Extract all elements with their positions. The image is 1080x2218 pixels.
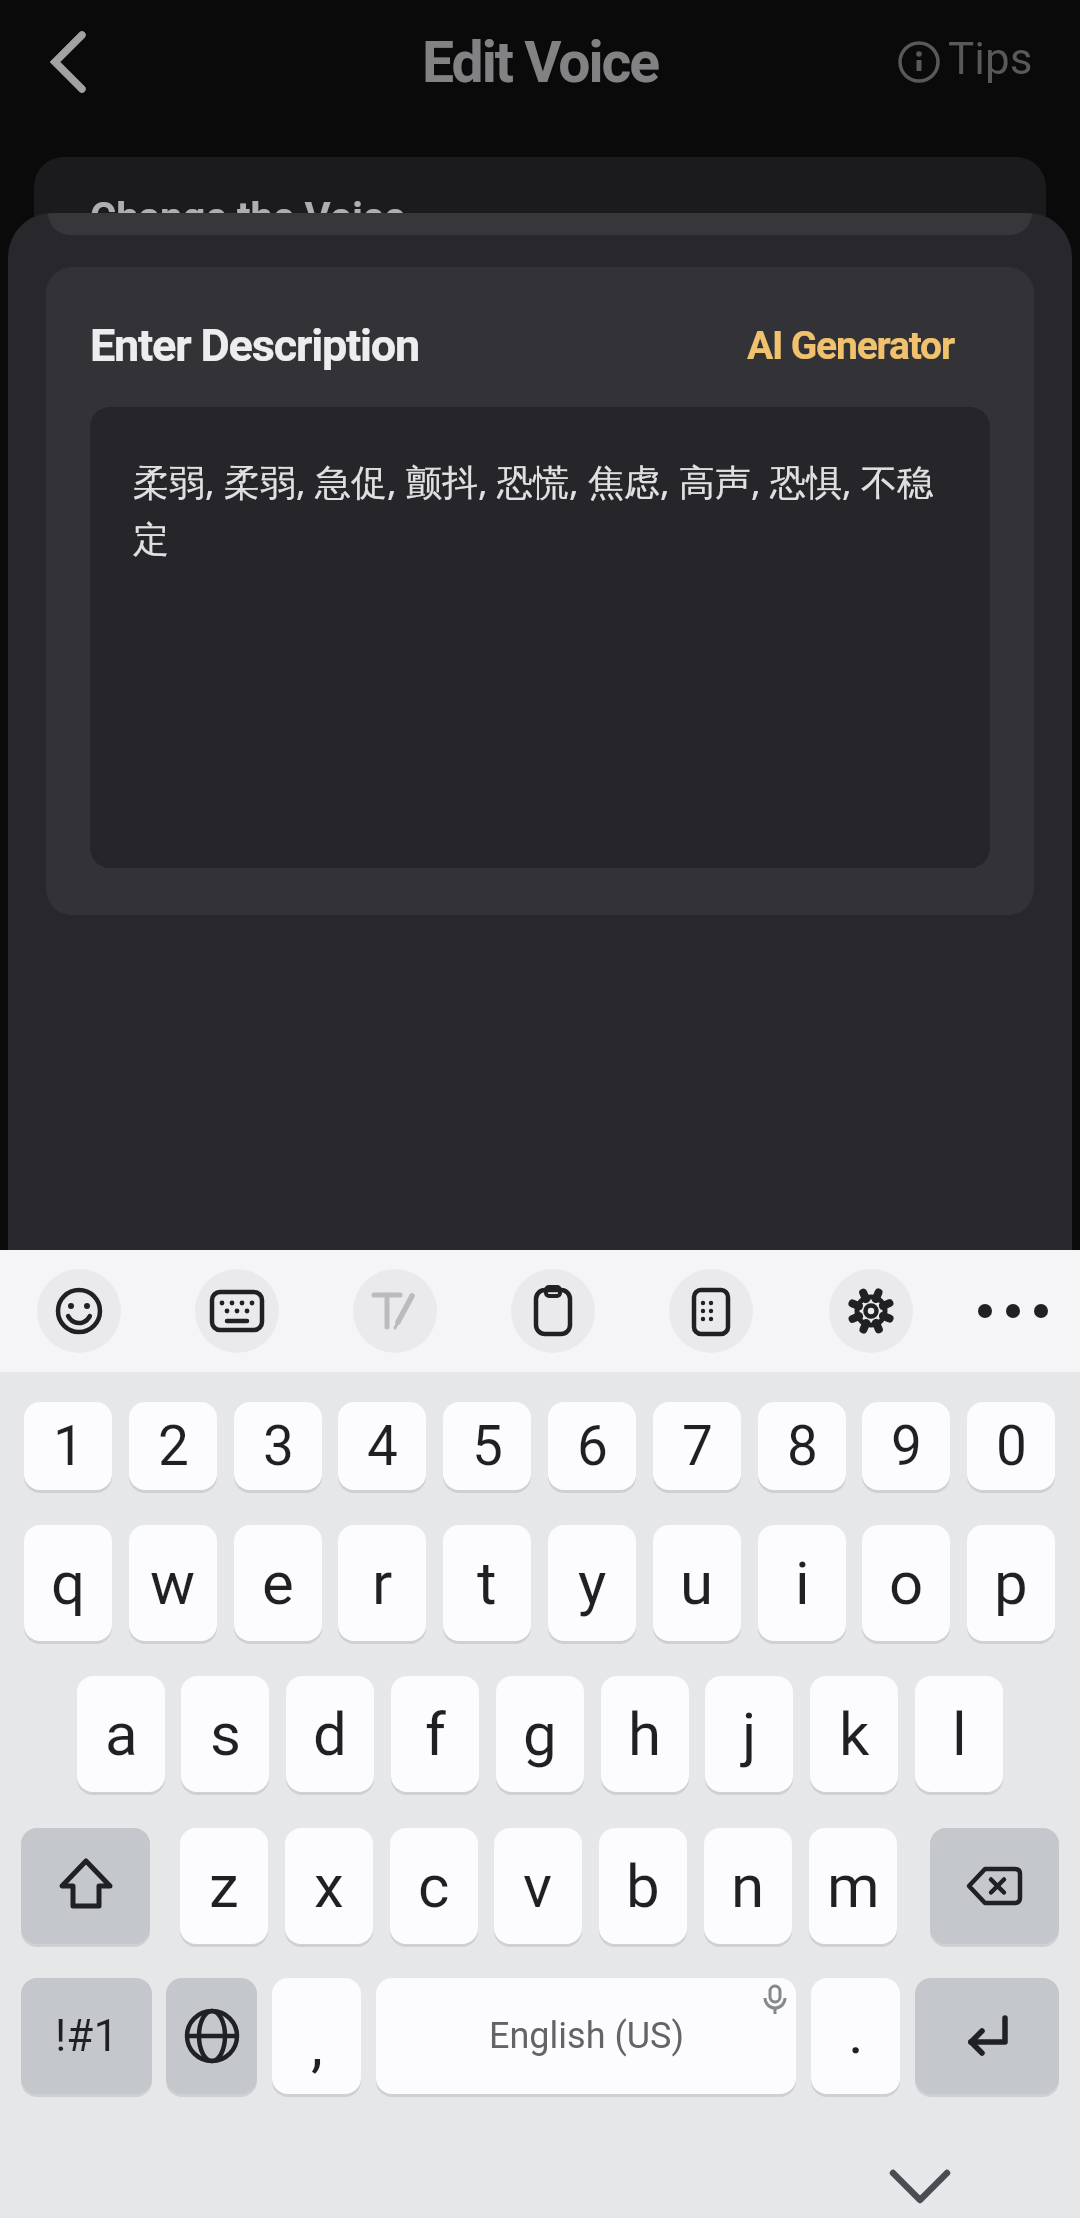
button[interactable]: 8 (758, 1402, 846, 1490)
staticText: Enter Description (90, 319, 420, 372)
staticText: a (105, 1699, 138, 1769)
staticText: , (311, 2009, 323, 2079)
staticText: i (795, 1548, 810, 1618)
button[interactable]: English (US) (376, 1978, 796, 2094)
staticText: n (731, 1851, 765, 1921)
button[interactable]: p (967, 1525, 1055, 1641)
button[interactable]: m (809, 1828, 897, 1944)
button[interactable]: 4 (338, 1402, 426, 1490)
button[interactable]: 7 (653, 1402, 741, 1490)
button[interactable] (166, 1978, 257, 2094)
staticText: r (372, 1548, 393, 1618)
button[interactable]: 1 (24, 1402, 112, 1490)
staticText: 柔弱, 柔弱, 急促, 颤抖, 恐慌, 焦虑, 高声, 恐惧, 不稳 (133, 457, 934, 506)
button[interactable]: AI Generator (747, 323, 955, 369)
button[interactable]: !#1 (21, 1978, 152, 2094)
button[interactable]: , (272, 1978, 361, 2094)
button[interactable]: e (234, 1525, 322, 1641)
staticText: 6 (577, 1414, 608, 1478)
staticText: h (628, 1699, 662, 1769)
button[interactable] (930, 1828, 1059, 1944)
button[interactable]: o (862, 1525, 950, 1641)
staticText: p (994, 1548, 1028, 1618)
button[interactable]: v (494, 1828, 582, 1944)
staticText: 2 (158, 1414, 189, 1478)
button[interactable]: g (496, 1676, 584, 1792)
button[interactable] (21, 1828, 150, 1944)
button[interactable] (195, 1269, 279, 1353)
button[interactable]: q (24, 1525, 112, 1641)
staticText: g (523, 1699, 557, 1769)
staticText: l (952, 1699, 967, 1769)
button[interactable]: t (443, 1525, 531, 1641)
staticText: o (889, 1548, 924, 1618)
button[interactable]: . (811, 1978, 900, 2094)
staticText: d (313, 1699, 347, 1769)
button[interactable]: Tips (890, 30, 1050, 94)
staticText: . (848, 1997, 864, 2067)
staticText: English (US) (489, 2015, 684, 2057)
button[interactable] (829, 1269, 913, 1353)
staticText: m (827, 1851, 880, 1921)
staticText: y (578, 1548, 607, 1618)
staticText: Tips (948, 33, 1033, 85)
staticText: b (626, 1851, 660, 1921)
button[interactable]: i (758, 1525, 846, 1641)
button[interactable]: 9 (862, 1402, 950, 1490)
button[interactable]: 2 (129, 1402, 217, 1490)
staticText: 1 (53, 1414, 84, 1478)
staticText: 7 (682, 1414, 713, 1478)
staticText: 0 (996, 1414, 1027, 1478)
button[interactable] (511, 1269, 595, 1353)
button[interactable]: y (548, 1525, 636, 1641)
staticText: !#1 (55, 2010, 119, 2062)
staticText: w (150, 1548, 196, 1618)
staticText: x (314, 1851, 344, 1921)
button[interactable]: b (599, 1828, 687, 1944)
button[interactable] (37, 1269, 121, 1353)
button[interactable]: n (704, 1828, 792, 1944)
button[interactable]: x (285, 1828, 373, 1944)
staticText: k (839, 1699, 870, 1769)
button[interactable]: r (338, 1525, 426, 1641)
button[interactable] (50, 31, 86, 93)
staticText: 定 (133, 517, 169, 562)
staticText: c (418, 1851, 450, 1921)
staticText: Edit Voice (422, 29, 659, 96)
staticText: s (210, 1699, 241, 1769)
button[interactable]: h (601, 1676, 689, 1792)
staticText: j (742, 1699, 757, 1769)
staticText: z (209, 1851, 239, 1921)
button[interactable]: j (705, 1676, 793, 1792)
staticText: e (262, 1548, 294, 1618)
staticText: 8 (787, 1414, 818, 1478)
staticText: v (523, 1851, 553, 1921)
button[interactable]: 0 (967, 1402, 1055, 1490)
button[interactable]: 5 (443, 1402, 531, 1490)
staticText: 3 (263, 1414, 294, 1478)
button[interactable]: 3 (234, 1402, 322, 1490)
button[interactable] (915, 1978, 1059, 2094)
button[interactable]: l (915, 1676, 1003, 1792)
button[interactable]: z (180, 1828, 268, 1944)
staticText: 9 (891, 1414, 922, 1478)
staticText: q (51, 1548, 86, 1618)
staticText: u (680, 1548, 714, 1618)
button[interactable]: d (286, 1676, 374, 1792)
button[interactable]: c (390, 1828, 478, 1944)
button[interactable]: u (653, 1525, 741, 1641)
button[interactable] (880, 2158, 960, 2218)
button[interactable]: w (129, 1525, 217, 1641)
button[interactable] (669, 1269, 753, 1353)
staticText: t (477, 1548, 497, 1618)
button[interactable]: k (810, 1676, 898, 1792)
button[interactable]: s (181, 1676, 269, 1792)
button[interactable]: 6 (548, 1402, 636, 1490)
staticText: 4 (367, 1414, 398, 1478)
button[interactable]: f (391, 1676, 479, 1792)
button[interactable] (965, 1291, 1061, 1331)
staticText: f (425, 1699, 446, 1769)
button[interactable]: a (77, 1676, 165, 1792)
staticText: 5 (472, 1414, 503, 1478)
button[interactable] (353, 1269, 437, 1353)
